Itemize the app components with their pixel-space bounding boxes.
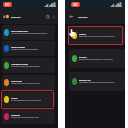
staticText: DuckDNS <box>79 33 87 35</box>
staticText: Areas & Zones <box>11 80 22 82</box>
button[interactable]: Dashboards <box>2 109 55 124</box>
staticText: Simple browser-based file editor for Hom… <box>79 59 113 61</box>
staticText: REC <box>73 3 78 7</box>
staticText: Terminal & SSH <box>79 79 91 81</box>
button[interactable]: Areas & Zones <box>2 75 55 90</box>
staticText: Automations, scenes, scripts and bluepri… <box>11 66 40 68</box>
staticText: Automations & Scenes <box>11 63 29 65</box>
staticText: Add-ons <box>11 97 18 99</box>
button[interactable]: File editor <box>69 49 125 68</box>
staticText: REC <box>5 3 10 7</box>
button[interactable]: Back <box>69 14 74 19</box>
staticText: Run extra applications next to Home Assi… <box>11 100 42 102</box>
staticText: Manage locations in and around your hous… <box>11 83 40 85</box>
button[interactable]: Automations & Scenes <box>2 58 55 73</box>
staticText: Add-ons <box>78 15 88 18</box>
staticText: Organize how you interact with your home <box>11 117 39 119</box>
staticText: Devices & Services <box>11 46 26 48</box>
button[interactable]: Terminal & SSH <box>69 72 125 91</box>
staticText: Allow logging in remotely to Home Assist… <box>79 82 115 84</box>
staticText: Free Dynamic DNS (DuckDNS) w/ Let's Encr… <box>79 36 115 38</box>
button[interactable]: Add-ons <box>2 92 55 107</box>
button[interactable]: More options <box>51 14 57 20</box>
staticText: Settings <box>11 15 21 18</box>
button[interactable]: Home Assistant Cloud <box>2 25 55 40</box>
button[interactable]: Devices & Services <box>2 41 55 56</box>
button[interactable]: DuckDNS <box>69 26 125 45</box>
staticText: Dashboards <box>11 114 21 116</box>
staticText: Integrations, devices, entities and help… <box>11 49 39 51</box>
staticText: File editor <box>79 56 87 58</box>
staticText: Home Assistant Cloud <box>11 30 28 32</box>
staticText: Control home state away and integrate wi… <box>11 33 48 35</box>
button[interactable]: Search <box>45 14 51 20</box>
